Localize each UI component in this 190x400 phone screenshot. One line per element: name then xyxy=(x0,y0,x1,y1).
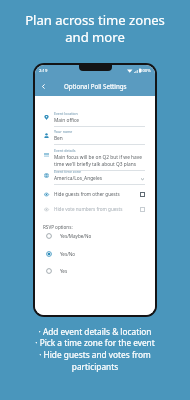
staticText: Main office xyxy=(54,117,79,124)
staticText: · Add event details & location · Pick a … xyxy=(35,326,155,373)
button[interactable]: Yes xyxy=(35,265,155,277)
staticText: Your name xyxy=(54,129,73,134)
staticText: Yes/No xyxy=(60,251,76,257)
staticText: America/Los_Angeles xyxy=(54,175,103,182)
button[interactable]: Hide vote numbers from guests xyxy=(35,203,155,215)
staticText: 2:19 xyxy=(39,68,48,74)
staticText: Event location xyxy=(54,111,78,116)
staticText: time we'll briefly talk about Q3 plans xyxy=(54,161,136,168)
staticText: Yes/Maybe/No xyxy=(60,233,92,239)
button[interactable]: Yes/Maybe/No xyxy=(35,230,155,242)
button[interactable]: Your name xyxy=(35,129,155,145)
staticText: Plan across time zones and more xyxy=(25,11,165,46)
staticText: 100% xyxy=(140,68,151,74)
staticText: Main focus will be on Q2 but if we have xyxy=(54,154,142,161)
button[interactable]: Event time zone xyxy=(35,169,155,185)
staticText: Hide guests from other guests xyxy=(54,191,140,197)
button[interactable]: Event location xyxy=(35,111,155,127)
staticText: Optional Poll Settings xyxy=(64,82,127,90)
staticText: Event time zone xyxy=(54,169,81,174)
button[interactable]: Event details xyxy=(35,148,155,171)
button[interactable]: Back xyxy=(35,76,51,96)
staticText: Hide vote numbers from guests xyxy=(54,206,140,212)
button[interactable]: Hide guests from other guests xyxy=(35,188,155,200)
staticText: Ben xyxy=(54,135,63,142)
staticText: RSVP options: xyxy=(43,224,73,230)
button[interactable]: Yes/No xyxy=(35,248,155,260)
staticText: Yes xyxy=(60,268,68,274)
staticText: Event details xyxy=(54,148,76,153)
